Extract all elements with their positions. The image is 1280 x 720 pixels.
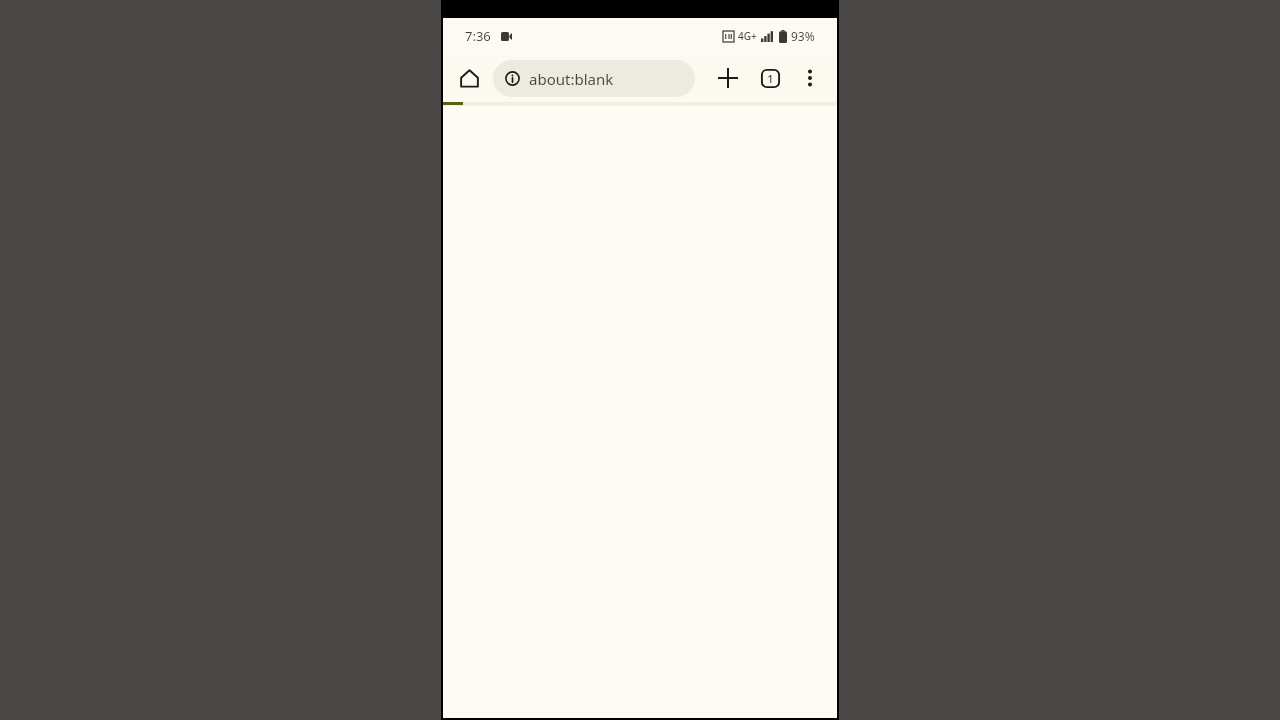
staticText: 7:36 [465,27,491,45]
staticText: 1 [767,71,774,86]
button[interactable]: More options [791,59,829,97]
staticText: about:blank [529,69,614,89]
staticText: 93% [791,28,815,44]
button[interactable]: about:blank [493,60,695,97]
button[interactable]: Home [451,60,487,96]
button[interactable]: New tab [709,59,747,97]
button[interactable]: Tabs, 1 open [751,59,789,97]
staticText: 4G+ [738,29,757,43]
